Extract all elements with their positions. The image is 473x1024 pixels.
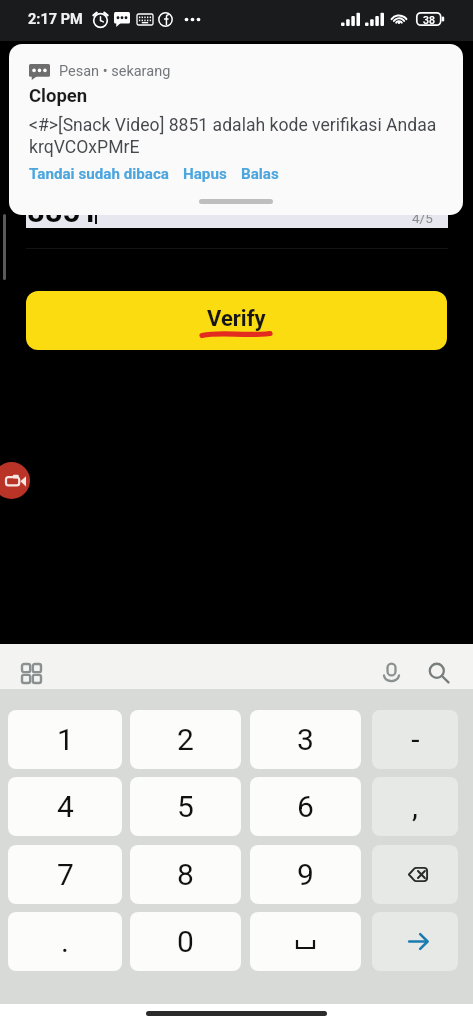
button[interactable]: 4 <box>8 777 122 836</box>
button[interactable]: 2 <box>130 710 241 769</box>
button[interactable]: Search <box>422 656 456 690</box>
staticText: Hapus <box>183 165 227 183</box>
staticText: Pesan • sekarang <box>59 63 171 80</box>
staticText: 2:17 PM <box>28 11 83 28</box>
button[interactable]: Balas <box>241 165 279 183</box>
button[interactable]: Tandai sudah dibaca <box>29 165 169 183</box>
staticText: 4 <box>57 789 74 824</box>
staticText: Balas <box>241 165 279 183</box>
button[interactable]: Backspace <box>372 845 458 904</box>
staticText: 7 <box>57 857 74 892</box>
button[interactable]: Voice input <box>374 656 408 690</box>
button[interactable]: Verify <box>26 291 447 350</box>
staticText: Tandai sudah dibaca <box>29 165 169 183</box>
button[interactable]: 0 <box>130 912 241 971</box>
button[interactable]: 1 <box>8 710 122 769</box>
button[interactable]: - <box>372 710 458 769</box>
staticText: 9 <box>297 857 314 892</box>
button[interactable]: 3 <box>250 710 361 769</box>
staticText: 4/5 <box>412 210 433 226</box>
staticText: . <box>61 924 69 959</box>
staticText: <#>[Snack Video] 8851 adalah kode verifi… <box>29 115 453 157</box>
staticText: 1 <box>57 722 74 757</box>
button[interactable]: 7 <box>8 845 122 904</box>
button[interactable]: 5 <box>130 777 241 836</box>
staticText: 2 <box>177 722 194 757</box>
button[interactable]: Keyboard layout <box>16 658 47 689</box>
button[interactable]: 9 <box>250 845 361 904</box>
staticText: 8 <box>177 857 194 892</box>
button[interactable]: Screen recorder <box>0 462 30 499</box>
staticText: 38 <box>423 14 435 26</box>
staticText: 6 <box>297 789 314 824</box>
staticText: 8851 <box>27 193 99 229</box>
staticText: Clopen <box>29 85 88 107</box>
button[interactable]: 6 <box>250 777 361 836</box>
button[interactable]: . <box>8 912 122 971</box>
staticText: 0 <box>177 924 194 959</box>
button[interactable]: 8851 <box>26 186 448 228</box>
button[interactable]: Enter <box>372 912 458 971</box>
staticText: Verify <box>207 306 266 332</box>
staticText: 3 <box>297 722 314 757</box>
staticText: , <box>412 789 418 824</box>
button[interactable]: 8 <box>130 845 241 904</box>
button[interactable]: Space <box>250 912 361 971</box>
button[interactable]: Pesan • sekarang <box>9 44 463 215</box>
staticText: 5 <box>177 789 194 824</box>
staticText: - <box>411 722 420 757</box>
button[interactable]: , <box>372 777 458 836</box>
button[interactable]: Hapus <box>183 165 227 183</box>
